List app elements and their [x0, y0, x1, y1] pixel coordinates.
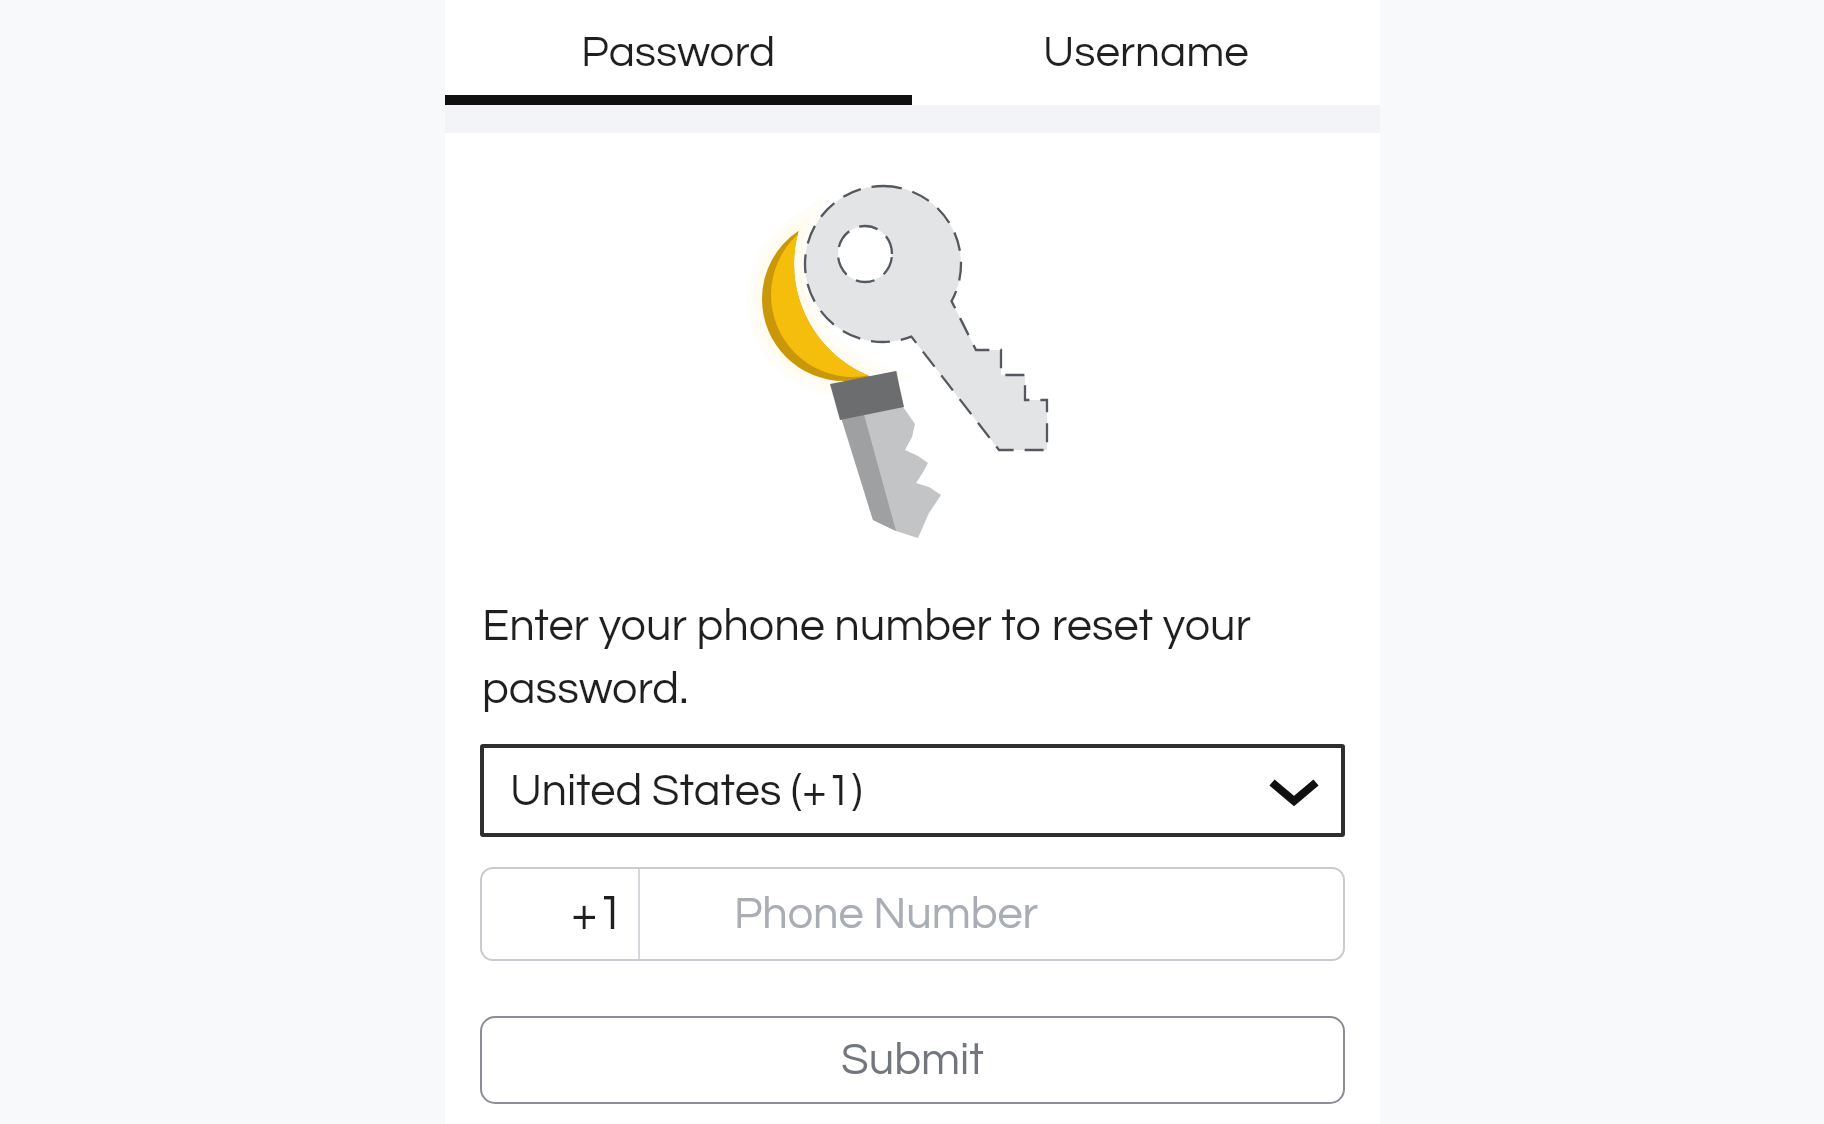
- button[interactable]: +1: [480, 867, 1345, 961]
- button[interactable]: United States (+1): [480, 744, 1345, 837]
- staticText: Submit: [841, 1037, 984, 1083]
- staticText: Enter your phone number to reset your pa…: [482, 603, 1290, 713]
- other: Open country list: [1269, 766, 1319, 816]
- button[interactable]: Username: [912, 0, 1380, 95]
- staticText: United States (+1): [510, 768, 863, 814]
- staticText: Phone Number: [734, 891, 1039, 937]
- button[interactable]: Submit: [480, 1016, 1345, 1104]
- staticText: Username: [1043, 30, 1249, 75]
- staticText: Password: [581, 30, 776, 75]
- button[interactable]: Password: [445, 0, 912, 95]
- staticText: +1: [571, 890, 624, 939]
